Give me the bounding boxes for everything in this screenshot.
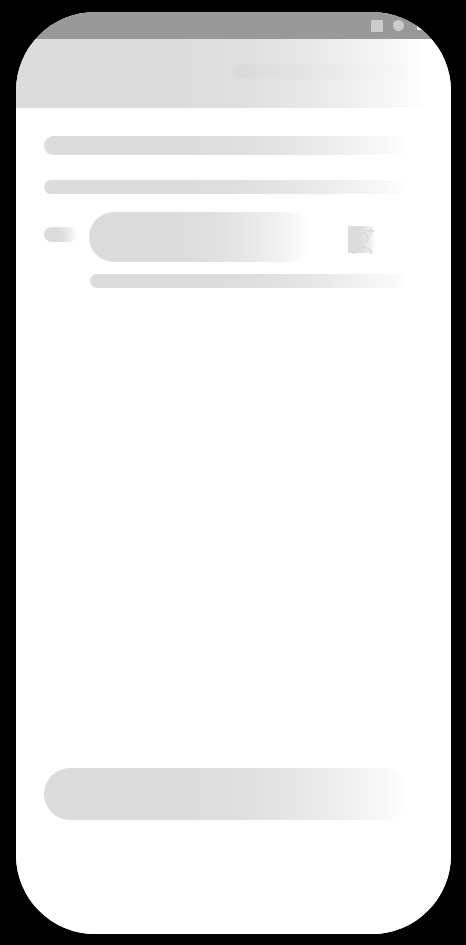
other: Battery xyxy=(417,25,422,30)
other: Wi-Fi xyxy=(393,20,404,31)
button[interactable] xyxy=(89,212,312,262)
button[interactable]: Add person xyxy=(348,226,375,253)
button[interactable] xyxy=(44,768,409,820)
